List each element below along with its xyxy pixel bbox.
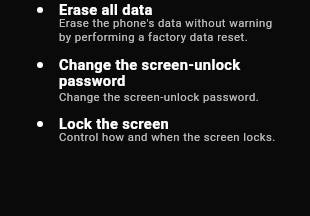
staticText: Control how and when the screen locks. — [59, 131, 276, 144]
staticText: Erase the phone's data without warning b… — [59, 17, 273, 44]
staticText: Lock the screen — [59, 115, 170, 132]
staticText: Change the screen-unlock password — [59, 56, 241, 90]
button[interactable] — [30, 114, 300, 148]
staticText: Erase all data — [59, 1, 153, 18]
button[interactable] — [30, 55, 300, 107]
staticText: Change the screen-unlock password. — [59, 91, 260, 104]
button[interactable] — [30, 0, 300, 48]
